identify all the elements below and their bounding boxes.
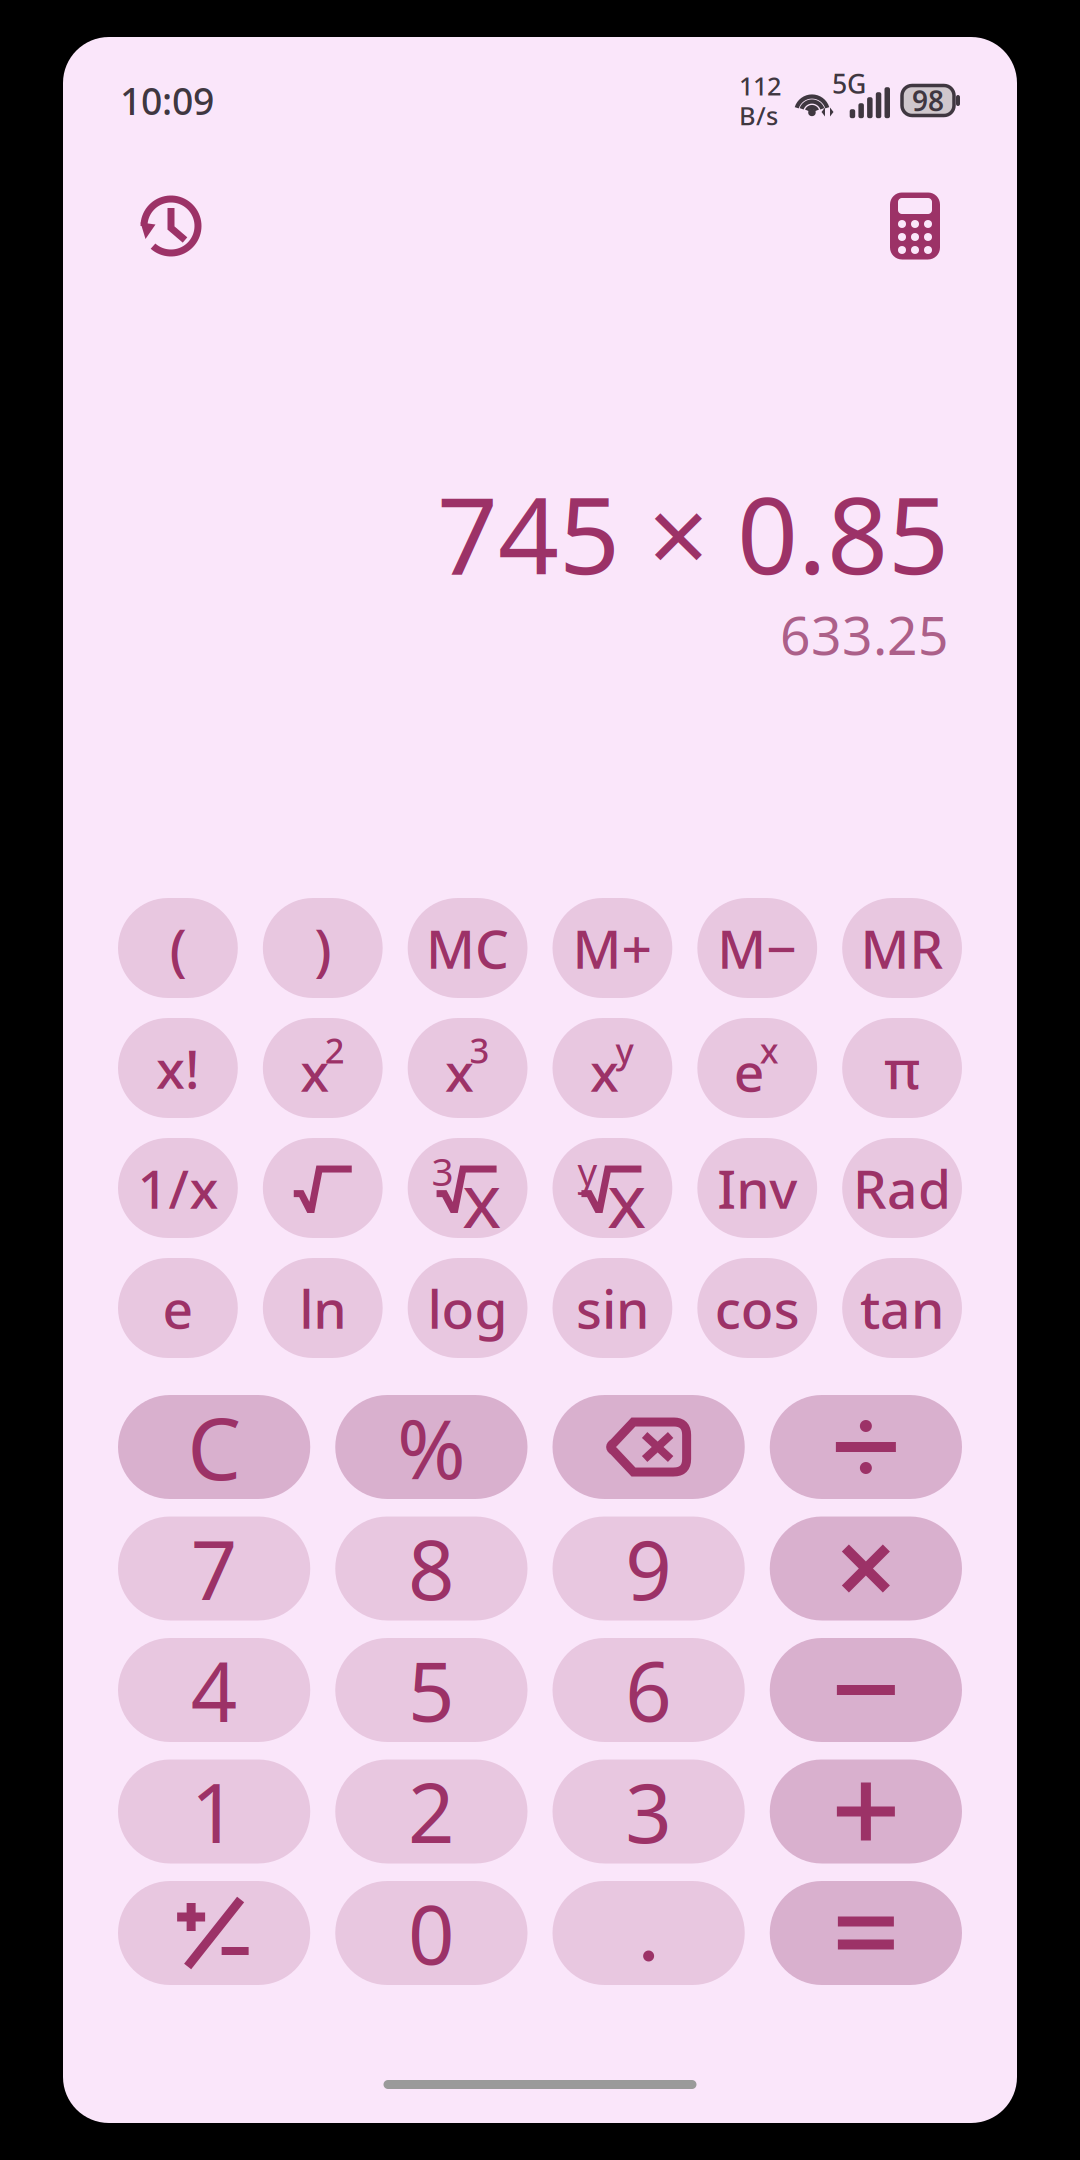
staticText: Rad bbox=[853, 1153, 951, 1223]
staticText: 3 bbox=[625, 1757, 672, 1865]
button[interactable]: 6 bbox=[552, 1638, 745, 1742]
button[interactable]: π bbox=[842, 1018, 962, 1118]
staticText: % bbox=[397, 1392, 466, 1502]
button[interactable] bbox=[770, 1395, 962, 1499]
staticText: x bbox=[607, 1149, 646, 1249]
staticText: cos bbox=[715, 1273, 800, 1343]
button[interactable]: 0 bbox=[335, 1881, 527, 1985]
button[interactable]: History bbox=[132, 187, 210, 265]
button[interactable]: x! bbox=[118, 1018, 238, 1118]
staticText: 2 bbox=[325, 1027, 345, 1073]
staticText: x bbox=[590, 1036, 619, 1106]
button[interactable] bbox=[263, 1138, 383, 1238]
staticText: ) bbox=[314, 911, 331, 985]
staticText: M− bbox=[717, 913, 797, 983]
button[interactable]: 7 bbox=[118, 1516, 310, 1620]
button[interactable]: 1/x bbox=[118, 1138, 238, 1238]
staticText: C bbox=[187, 1390, 241, 1504]
staticText: 1 bbox=[191, 1757, 238, 1865]
staticText: 112 bbox=[739, 69, 781, 102]
staticText: x bbox=[462, 1149, 501, 1249]
staticText: 7 bbox=[191, 1514, 238, 1622]
staticText: x bbox=[300, 1036, 329, 1106]
staticText: 4 bbox=[191, 1636, 238, 1744]
button[interactable]: x bbox=[263, 1018, 383, 1118]
button[interactable]: e bbox=[697, 1018, 817, 1118]
button[interactable]: Inv bbox=[697, 1138, 817, 1238]
staticText: M+ bbox=[572, 913, 652, 983]
button[interactable] bbox=[770, 1759, 962, 1863]
staticText: 633.25 bbox=[780, 599, 949, 670]
button[interactable]: MC bbox=[408, 898, 527, 998]
button[interactable]: tan bbox=[842, 1258, 962, 1358]
staticText: 5 bbox=[408, 1636, 455, 1744]
button[interactable]: 2 bbox=[335, 1759, 527, 1863]
staticText: x! bbox=[156, 1033, 200, 1103]
button[interactable]: ( bbox=[118, 898, 238, 998]
button[interactable]: Switch calculator mode bbox=[882, 184, 948, 267]
button[interactable] bbox=[118, 1881, 310, 1985]
button[interactable]: 3 bbox=[408, 1138, 527, 1238]
button[interactable] bbox=[770, 1638, 962, 1742]
button[interactable]: ) bbox=[263, 898, 383, 998]
button[interactable]: sin bbox=[552, 1258, 672, 1358]
button[interactable]: 1 bbox=[118, 1759, 310, 1863]
button[interactable]: M− bbox=[697, 898, 817, 998]
staticText: 5G bbox=[832, 66, 866, 101]
staticText: ln bbox=[299, 1273, 346, 1343]
button[interactable]: % bbox=[335, 1395, 527, 1499]
button[interactable] bbox=[770, 1516, 962, 1620]
staticText: y bbox=[615, 1027, 633, 1073]
button[interactable]: cos bbox=[697, 1258, 817, 1358]
button[interactable]: 4 bbox=[118, 1638, 310, 1742]
staticText: 10:09 bbox=[120, 76, 214, 125]
staticText: 745 × 0.85 bbox=[437, 462, 949, 604]
button[interactable] bbox=[552, 1881, 745, 1985]
staticText: e bbox=[734, 1036, 765, 1106]
button[interactable]: Rad bbox=[842, 1138, 962, 1238]
staticText: tan bbox=[860, 1273, 944, 1343]
staticText: x bbox=[445, 1036, 474, 1106]
button[interactable]: log bbox=[408, 1258, 527, 1358]
staticText: 98 bbox=[912, 82, 944, 119]
staticText: MC bbox=[426, 913, 509, 983]
staticText: Inv bbox=[717, 1153, 797, 1223]
staticText: B/s bbox=[739, 98, 778, 132]
button[interactable]: 5 bbox=[335, 1638, 527, 1742]
staticText: 3 bbox=[470, 1027, 490, 1073]
staticText: 3 bbox=[432, 1145, 454, 1197]
staticText: x bbox=[760, 1027, 779, 1073]
button[interactable]: MR bbox=[842, 898, 962, 998]
button[interactable]: C bbox=[118, 1395, 310, 1499]
button[interactable]: ln bbox=[263, 1258, 383, 1358]
staticText: 9 bbox=[625, 1514, 672, 1622]
staticText: 1/x bbox=[137, 1153, 218, 1223]
button[interactable]: 9 bbox=[552, 1516, 745, 1620]
button[interactable]: x bbox=[408, 1018, 527, 1118]
button[interactable]: x bbox=[552, 1018, 672, 1118]
staticText: 2 bbox=[408, 1757, 455, 1865]
button[interactable]: 3 bbox=[552, 1759, 745, 1863]
staticText: log bbox=[428, 1273, 508, 1343]
button[interactable] bbox=[770, 1881, 962, 1985]
staticText: MR bbox=[861, 913, 944, 983]
staticText: 0 bbox=[408, 1879, 455, 1987]
staticText: ( bbox=[169, 911, 186, 985]
button[interactable]: y bbox=[552, 1138, 672, 1238]
button[interactable]: e bbox=[118, 1258, 238, 1358]
staticText: y bbox=[577, 1145, 597, 1197]
staticText: 6 bbox=[625, 1636, 672, 1744]
staticText: sin bbox=[576, 1273, 649, 1343]
button[interactable]: M+ bbox=[552, 898, 672, 998]
staticText: π bbox=[884, 1033, 920, 1103]
button[interactable]: 8 bbox=[335, 1516, 527, 1620]
staticText: 8 bbox=[408, 1514, 455, 1622]
staticText: e bbox=[162, 1273, 193, 1343]
button[interactable] bbox=[552, 1395, 745, 1499]
